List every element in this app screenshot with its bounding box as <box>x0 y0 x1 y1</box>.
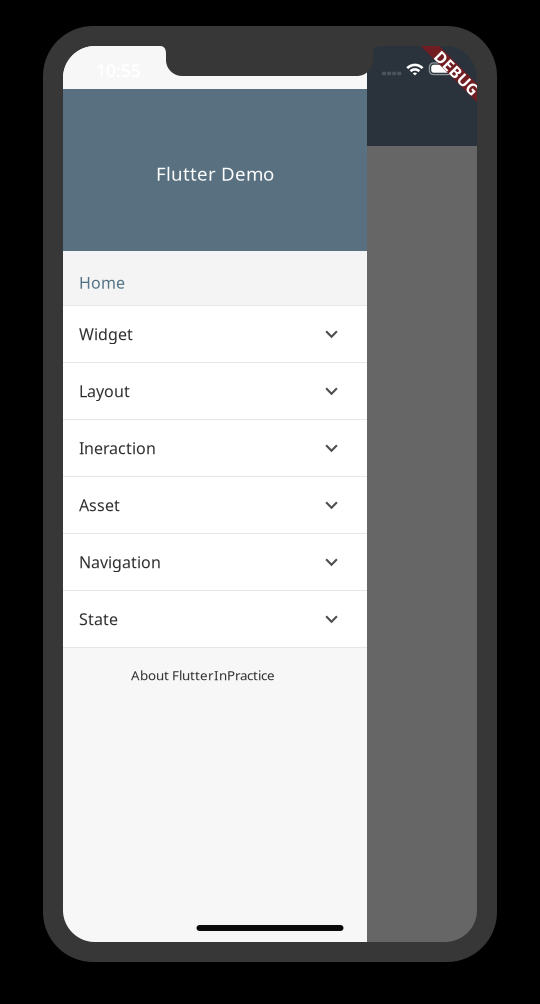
button[interactable]: Ineraction <box>63 420 367 476</box>
staticText: Home <box>79 272 125 293</box>
button[interactable]: Home <box>63 251 367 305</box>
staticText: About FlutterInPractice <box>131 666 275 684</box>
staticText: Widget <box>79 323 133 345</box>
button[interactable]: About FlutterInPractice <box>63 648 367 702</box>
button[interactable]: State <box>63 591 367 647</box>
button[interactable]: Widget <box>63 306 367 362</box>
staticText: State <box>79 608 118 630</box>
button[interactable]: Layout <box>63 363 367 419</box>
staticText: DEBUG <box>430 59 486 80</box>
staticText: Flutter Demo <box>156 161 274 186</box>
button[interactable]: Asset <box>63 477 367 533</box>
staticText: Layout <box>79 380 130 402</box>
staticText: Asset <box>79 494 120 516</box>
staticText: Navigation <box>79 551 161 573</box>
button[interactable]: Navigation <box>63 534 367 590</box>
staticText: Ineraction <box>79 437 156 459</box>
